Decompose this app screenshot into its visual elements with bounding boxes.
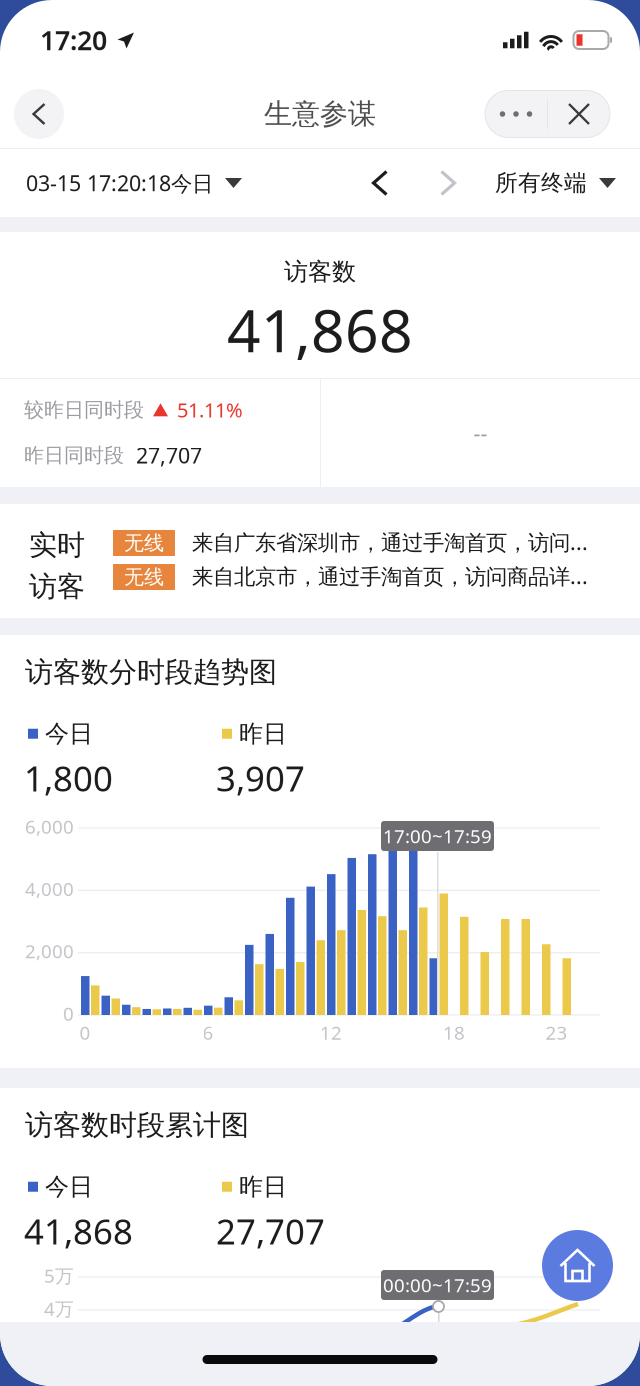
staticText: 访客数时段累计图 — [25, 1108, 249, 1142]
staticText: 3,907 — [216, 755, 305, 801]
button[interactable]: Home — [542, 1230, 613, 1301]
staticText: 来自北京市，通过手淘首页，访问商品详... — [192, 562, 588, 590]
staticText: 无线 — [124, 531, 164, 555]
staticText: 23 — [545, 1020, 567, 1045]
staticText: 0 — [79, 1020, 90, 1045]
staticText: 00:00~17:59 — [383, 1273, 492, 1297]
staticText: 访客数 — [284, 257, 356, 286]
staticText: 昨日 — [239, 719, 287, 748]
staticText: 6,000 — [25, 814, 74, 839]
staticText: 访客数分时段趋势图 — [25, 655, 277, 689]
button[interactable]: Next period — [420, 155, 476, 211]
staticText: 27,707 — [216, 1208, 325, 1254]
staticText: 12 — [320, 1020, 342, 1045]
button[interactable]: Back — [14, 89, 64, 139]
staticText: 来自广东省深圳市，通过手淘首页，访问... — [192, 528, 588, 556]
staticText: 今日 — [45, 1172, 93, 1201]
button[interactable]: Close — [548, 90, 610, 137]
staticText: 5万 — [44, 1263, 74, 1288]
staticText: 生意参谋 — [264, 97, 376, 131]
staticText: 17:00~17:59 — [383, 824, 492, 848]
staticText: -- — [473, 419, 487, 447]
staticText: 访客 — [29, 569, 85, 604]
button[interactable]: 03-15 17:20:18今日 — [0, 151, 268, 215]
staticText: 18 — [443, 1020, 465, 1045]
button[interactable]: Previous period — [352, 155, 408, 211]
staticText: 昨日同时段 — [24, 443, 124, 468]
staticText: 51.11% — [177, 397, 243, 423]
staticText: 4万 — [44, 1296, 74, 1321]
staticText: 0 — [63, 1001, 74, 1026]
button[interactable]: 所有终端 — [475, 151, 640, 215]
staticText: 6 — [202, 1020, 213, 1045]
staticText: 41,868 — [227, 290, 413, 368]
staticText: 4,000 — [25, 876, 74, 901]
staticText: 昨日 — [239, 1172, 287, 1201]
staticText: 2,000 — [25, 939, 74, 963]
staticText: 较昨日同时段 — [24, 398, 144, 422]
staticText: 27,707 — [136, 441, 202, 469]
staticText: 41,868 — [24, 1208, 133, 1254]
staticText: 1,800 — [24, 755, 113, 801]
staticText: 实时 — [29, 528, 85, 562]
staticText: 今日 — [45, 719, 93, 748]
button[interactable]: More — [485, 90, 547, 137]
staticText: 17:20 — [40, 22, 107, 58]
staticText: 所有终端 — [495, 169, 587, 197]
staticText: 无线 — [124, 565, 164, 589]
staticText: 03-15 17:20:18今日 — [26, 169, 213, 197]
